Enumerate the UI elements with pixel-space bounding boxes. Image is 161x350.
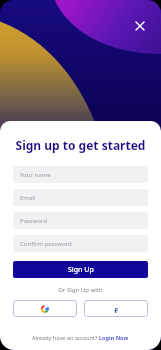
staticText: Login Now bbox=[99, 334, 129, 341]
button[interactable]: Sign up with Google bbox=[13, 300, 77, 317]
button[interactable]: Login Now bbox=[99, 334, 129, 341]
staticText: Sign Up bbox=[68, 265, 94, 275]
staticText: f bbox=[114, 305, 118, 313]
staticText: Already have an account? bbox=[32, 334, 99, 341]
button[interactable]: Sign Up bbox=[13, 261, 148, 278]
button[interactable]: Email bbox=[13, 189, 148, 206]
button[interactable]: Confirm password bbox=[13, 235, 148, 252]
staticText: Password bbox=[20, 217, 48, 225]
staticText: Email bbox=[20, 194, 36, 202]
button[interactable]: Your name bbox=[13, 166, 148, 183]
staticText: Sign up to get started bbox=[13, 137, 148, 153]
staticText: Your name bbox=[20, 171, 51, 179]
button[interactable]: Password bbox=[13, 212, 148, 229]
staticText: Or Sign Up with bbox=[13, 286, 148, 294]
button[interactable]: Close bbox=[131, 17, 149, 35]
button[interactable]: Sign up with Facebook bbox=[84, 300, 148, 317]
staticText: Confirm password bbox=[20, 240, 72, 248]
